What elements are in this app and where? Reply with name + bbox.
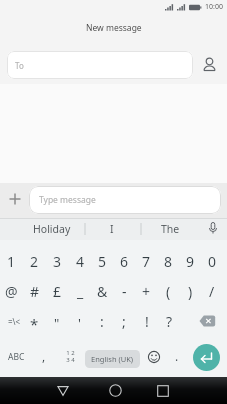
button[interactable]: " [46, 308, 68, 338]
staticText: The [161, 222, 180, 236]
staticText: & [97, 282, 108, 301]
staticText: " [54, 314, 60, 332]
staticText: ( [166, 282, 171, 301]
button[interactable]: ( [157, 276, 179, 306]
button[interactable]: =\< [3, 306, 25, 336]
button[interactable]: 6 [113, 246, 135, 276]
button[interactable]: 0 [201, 246, 223, 276]
button[interactable]: English (UK) [85, 350, 140, 368]
button[interactable]: ! [136, 306, 158, 336]
staticText: 8 [164, 252, 173, 271]
button[interactable] [57, 385, 69, 397]
staticText: 3 [53, 252, 62, 271]
button[interactable]: ? [158, 306, 180, 336]
staticText: ) [188, 282, 193, 301]
button[interactable]: £ [46, 276, 69, 306]
button[interactable]: # [23, 276, 46, 306]
button[interactable]: 4 [69, 246, 91, 276]
staticText: 6 [120, 252, 129, 271]
button[interactable]: Type message [29, 186, 221, 214]
button[interactable]: The [145, 218, 195, 240]
staticText: =\< [8, 316, 21, 327]
staticText: # [30, 282, 40, 301]
staticText: To [15, 60, 24, 71]
button[interactable] [199, 315, 216, 327]
button[interactable] [206, 221, 220, 237]
button[interactable]: / [201, 276, 223, 306]
staticText: . [175, 348, 179, 364]
staticText: 10:00 [205, 2, 223, 12]
staticText: 1 [7, 252, 16, 271]
staticText: 7 [142, 252, 151, 271]
staticText: , [42, 348, 46, 364]
staticText: ' [78, 314, 81, 332]
button[interactable]: 1 2 3 4 [61, 348, 79, 365]
staticText: 1 2 3 4 [66, 349, 75, 364]
button[interactable]: ' [68, 308, 90, 338]
button[interactable] [9, 193, 21, 205]
staticText: 0 [208, 252, 217, 271]
button[interactable] [157, 385, 169, 397]
button[interactable]: . [163, 337, 191, 375]
button[interactable]: & [91, 276, 113, 306]
staticText: English (UK) [91, 354, 134, 364]
button[interactable]: 1 [0, 246, 23, 276]
button[interactable]: 2 [23, 246, 46, 276]
button[interactable] [147, 350, 161, 364]
staticText: / [209, 282, 215, 301]
button[interactable]: 5 [91, 246, 113, 276]
staticText: Type message [39, 194, 96, 206]
button[interactable]: * [23, 309, 45, 339]
staticText: 5 [98, 252, 107, 271]
button[interactable]: 7 [135, 246, 157, 276]
staticText: @ [5, 282, 18, 301]
staticText: 4 [76, 252, 85, 271]
button[interactable] [202, 56, 218, 74]
button[interactable]: I [87, 218, 137, 240]
button[interactable]: - [113, 276, 135, 306]
staticText: Holiday [33, 222, 71, 236]
button[interactable]: @ [0, 276, 23, 306]
button[interactable]: , [30, 337, 58, 375]
button[interactable]: 9 [179, 246, 201, 276]
staticText: - [122, 282, 127, 301]
button[interactable]: + [135, 276, 157, 306]
button[interactable]: ) [179, 276, 201, 306]
button[interactable]: : [91, 306, 113, 336]
button[interactable]: 8 [157, 246, 179, 276]
staticText: I [110, 222, 114, 236]
staticText: 2 [30, 252, 39, 271]
staticText: : [100, 312, 104, 331]
staticText: £ [53, 282, 62, 301]
staticText: New message [86, 22, 142, 34]
staticText: * [30, 314, 39, 334]
staticText: ? [166, 312, 173, 331]
button[interactable]: ABC [2, 338, 30, 376]
button[interactable]: _ [69, 276, 91, 306]
button[interactable]: To [7, 51, 193, 79]
button[interactable] [193, 344, 220, 371]
button[interactable]: Holiday [27, 218, 77, 240]
staticText: ABC [8, 351, 25, 363]
button[interactable] [109, 384, 122, 397]
staticText: _ [77, 282, 84, 301]
button[interactable]: ; [113, 306, 135, 336]
button[interactable]: 3 [46, 246, 69, 276]
staticText: 9 [186, 252, 195, 271]
staticText: ! [145, 312, 149, 331]
staticText: ; [122, 312, 126, 331]
staticText: + [142, 282, 151, 301]
